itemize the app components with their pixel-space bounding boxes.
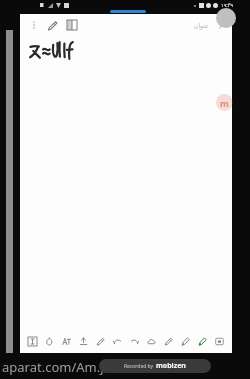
button[interactable]: Pencil	[160, 330, 177, 353]
button[interactable]: Select	[24, 330, 41, 353]
staticText: عنوان	[194, 22, 209, 29]
button[interactable]: More options	[26, 17, 42, 33]
button[interactable]: Draw	[92, 330, 109, 353]
staticText: aparat.com/Am.jalali	[2, 358, 129, 376]
button[interactable]: Insert	[75, 330, 92, 353]
button[interactable]: Split view	[64, 17, 80, 33]
button[interactable]: Highlighter	[194, 330, 211, 353]
button[interactable]: Eraser	[143, 330, 160, 353]
staticText: ۱۹:۳۹	[221, 2, 234, 9]
button[interactable]: Marker	[177, 330, 194, 353]
button[interactable]: عنوان	[194, 18, 228, 32]
button[interactable]: Pen	[44, 17, 60, 33]
staticText: Recorded by	[124, 363, 154, 370]
staticText: m	[220, 97, 229, 109]
button[interactable]: Text	[58, 330, 75, 353]
staticText: mobizen	[156, 361, 186, 371]
button[interactable]: Lasso	[41, 330, 58, 353]
button[interactable]: Redo	[126, 330, 143, 353]
other: Next	[214, 18, 228, 32]
button[interactable]: Undo	[109, 330, 126, 353]
button[interactable]: More tools	[211, 330, 228, 353]
